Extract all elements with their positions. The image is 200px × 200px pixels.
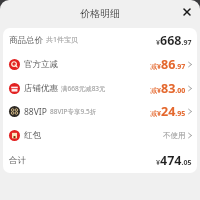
staticText: 红包 <box>24 130 41 141</box>
staticText: 价格明细 <box>80 7 120 20</box>
staticText: 满668元减83元 <box>61 84 106 93</box>
staticText: 店铺优惠 <box>24 83 58 94</box>
staticText: 88VIP <box>24 106 47 118</box>
staticText: 商品总价 <box>9 35 43 46</box>
button[interactable]: 店铺优惠 <box>9 76 192 100</box>
staticText: 不使用 <box>163 131 186 140</box>
staticText: 减¥24.95 <box>150 103 186 120</box>
button[interactable]: Close <box>178 3 196 21</box>
staticText: 88VIP专享9.5折 <box>50 107 97 116</box>
staticText: 合计 <box>9 155 26 166</box>
button[interactable]: 88VIP <box>9 100 192 123</box>
staticText: 官方立减 <box>24 59 58 70</box>
staticText: ¥668.97 <box>156 32 192 49</box>
staticText: 减¥86.97 <box>150 56 186 73</box>
staticText: 减¥83.00 <box>150 80 186 97</box>
staticText: ¥474.05 <box>156 152 192 169</box>
button[interactable]: 红包 <box>9 123 192 147</box>
staticText: 共1件宝贝 <box>46 35 79 45</box>
button[interactable]: 官方立减 <box>9 52 192 76</box>
